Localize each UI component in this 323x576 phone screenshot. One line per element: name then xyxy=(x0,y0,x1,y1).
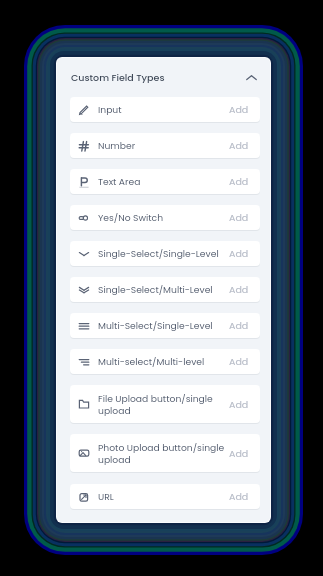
staticText: Single-Select/Single-Level xyxy=(98,247,219,260)
staticText: Multi-Select/Single-Level xyxy=(98,319,213,332)
staticText: URL xyxy=(98,490,114,503)
staticText: Add xyxy=(229,247,249,260)
button[interactable]: File Upload button/single upload xyxy=(70,385,260,423)
button[interactable]: Input xyxy=(70,97,260,122)
staticText: Add xyxy=(229,103,249,116)
staticText: Single-Select/Multi-Level xyxy=(98,283,213,296)
staticText: Multi-select/Multi-level xyxy=(98,355,205,368)
staticText: Add xyxy=(229,319,249,332)
staticText: Yes/No Switch xyxy=(98,211,164,224)
staticText: Add xyxy=(229,355,249,368)
button[interactable]: Multi-Select/Single-Level xyxy=(70,313,260,338)
staticText: File Upload button/single upload xyxy=(98,392,231,417)
staticText: Add xyxy=(229,211,249,224)
button[interactable]: URL xyxy=(70,484,260,509)
button[interactable]: Multi-select/Multi-level xyxy=(70,349,260,374)
staticText: Input xyxy=(98,103,122,116)
button[interactable]: Yes/No Switch xyxy=(70,205,260,230)
staticText: Custom Field Types xyxy=(71,71,165,84)
button[interactable]: Single-Select/Multi-Level xyxy=(70,277,260,302)
staticText: Add xyxy=(229,139,249,152)
button[interactable]: Photo Upload button/single upload xyxy=(70,434,260,472)
staticText: Add xyxy=(229,447,249,460)
staticText: Add xyxy=(229,283,249,296)
staticText: Number xyxy=(98,139,136,152)
staticText: Photo Upload button/single upload xyxy=(98,441,231,466)
other: Collapse section xyxy=(246,72,257,83)
staticText: Add xyxy=(229,398,249,411)
button[interactable]: Custom Field Types xyxy=(57,58,270,97)
button[interactable]: Text Area xyxy=(70,169,260,194)
staticText: Add xyxy=(229,175,249,188)
button[interactable]: Number xyxy=(70,133,260,158)
staticText: Text Area xyxy=(98,175,141,188)
staticText: Add xyxy=(229,490,249,503)
button[interactable]: Single-Select/Single-Level xyxy=(70,241,260,266)
